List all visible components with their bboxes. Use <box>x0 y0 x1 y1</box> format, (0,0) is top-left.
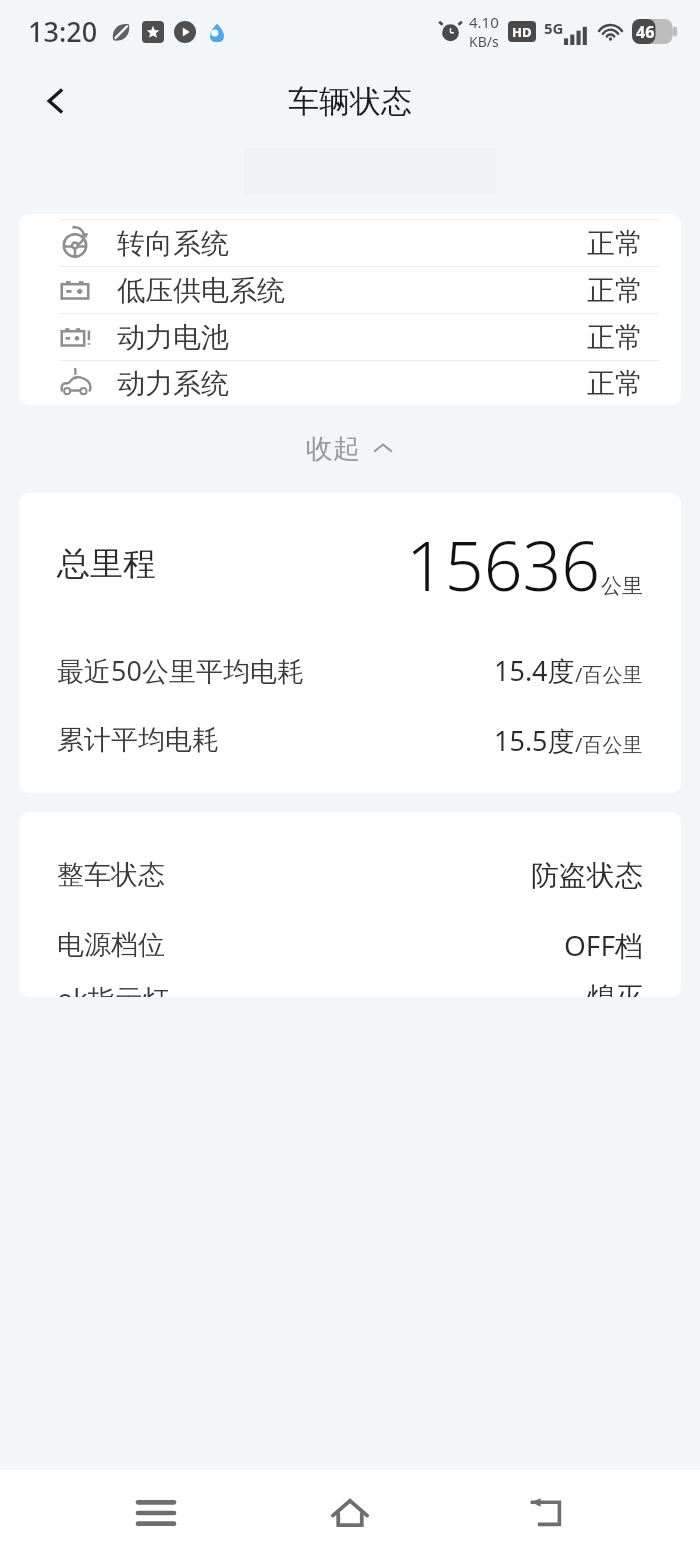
staticText: 13:20 <box>28 13 98 50</box>
button[interactable]: 累计平均电耗 <box>19 705 681 775</box>
button[interactable]: ok指示灯 <box>19 980 681 997</box>
button[interactable]: 电源档位 <box>19 910 681 980</box>
staticText: 5G <box>544 18 564 38</box>
staticText: 46 <box>636 21 655 43</box>
staticText: 收起 <box>306 432 360 466</box>
button[interactable]: 低压供电系统 <box>19 267 681 313</box>
staticText: 整车状态 <box>57 858 165 892</box>
button[interactable]: Back <box>28 73 84 129</box>
staticText: 动力电池 <box>117 320 229 355</box>
button[interactable]: Menu <box>117 1474 195 1552</box>
button[interactable]: Back <box>506 1474 584 1552</box>
staticText: /百公里 <box>575 661 643 688</box>
staticText: 动力系统 <box>117 366 229 401</box>
staticText: 最近50公里平均电耗 <box>57 652 304 689</box>
staticText: 防盗状态 <box>531 858 643 893</box>
staticText: 15.5度 <box>494 722 575 759</box>
button[interactable]: 整车状态 <box>19 840 681 910</box>
staticText: /百公里 <box>575 731 643 758</box>
staticText: 转向系统 <box>117 226 229 261</box>
button[interactable]: 转向系统 <box>19 220 681 266</box>
staticText: 公里 <box>601 573 643 599</box>
staticText: ok指示灯 <box>57 980 169 997</box>
staticText: OFF档 <box>564 926 643 964</box>
staticText: 正常 <box>587 226 643 261</box>
staticText: 正常 <box>587 273 643 308</box>
button[interactable]: 最近50公里平均电耗 <box>19 635 681 705</box>
staticText: 正常 <box>587 366 643 401</box>
staticText: 低压供电系统 <box>117 273 285 308</box>
button[interactable]: Home <box>311 1474 389 1552</box>
staticText: 累计平均电耗 <box>57 723 219 757</box>
staticText: 4.10 <box>469 12 499 32</box>
button[interactable]: 总里程 <box>19 493 681 635</box>
staticText: 总里程 <box>57 543 156 585</box>
staticText: 正常 <box>587 320 643 355</box>
staticText: KB/s <box>469 32 499 51</box>
button[interactable]: 动力系统 <box>19 361 681 405</box>
staticText: HD <box>512 23 532 41</box>
button[interactable]: 收起 <box>284 420 416 478</box>
button[interactable]: 动力电池 <box>19 314 681 360</box>
staticText: 电源档位 <box>57 928 165 962</box>
staticText: 熄灭 <box>587 980 643 997</box>
staticText: 车辆状态 <box>288 82 412 121</box>
staticText: 15636 <box>406 518 601 611</box>
staticText: 15.4度 <box>494 652 575 689</box>
